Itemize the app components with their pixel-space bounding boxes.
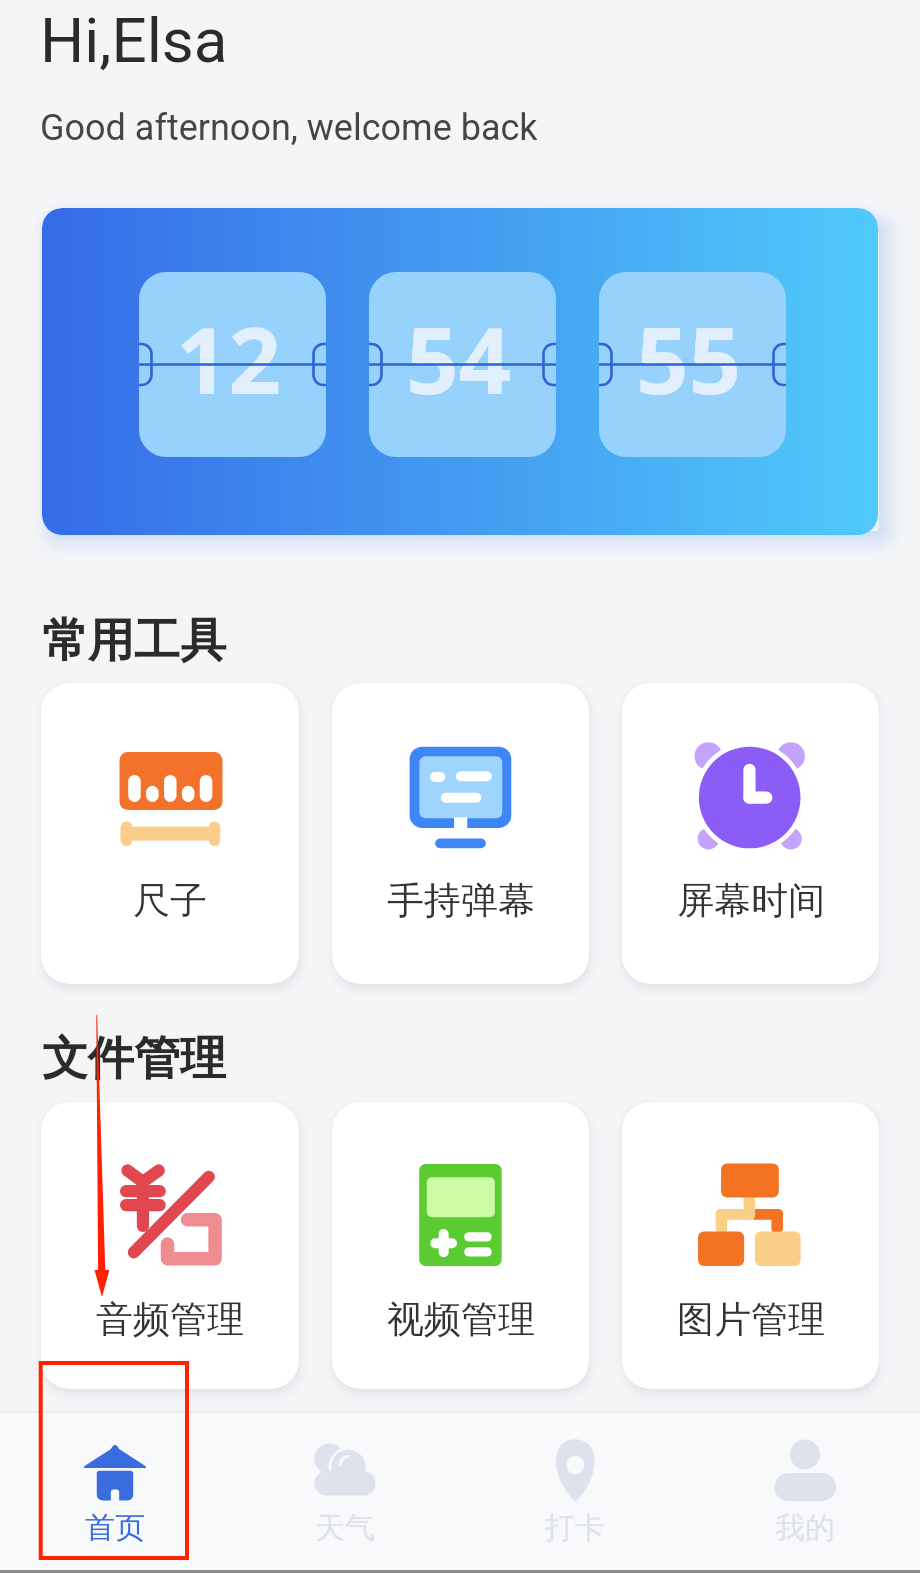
staticText: 音频管理 [96, 1296, 244, 1343]
staticText: 常用工具 [42, 612, 226, 670]
staticText: 打卡 [545, 1509, 605, 1547]
button[interactable]: Flip clock 12:54:55 [42, 208, 878, 535]
button[interactable]: 视频管理 [332, 1102, 589, 1389]
button[interactable]: 天气 [230, 1413, 460, 1573]
button[interactable]: 我的 [690, 1413, 920, 1573]
staticText: 55 [636, 296, 742, 421]
button[interactable]: 手持弹幕 [332, 683, 589, 984]
staticText: 54 [406, 296, 512, 421]
staticText: 手持弹幕 [387, 877, 535, 924]
button[interactable]: 打卡 [460, 1413, 690, 1573]
staticText: Hi,Elsa [40, 4, 228, 77]
staticText: 屏幕时间 [677, 877, 825, 924]
button[interactable]: 尺子 [41, 683, 299, 984]
button[interactable]: 屏幕时间 [622, 683, 879, 984]
button[interactable]: 音频管理 [41, 1102, 299, 1389]
button[interactable]: 首页 [0, 1413, 230, 1573]
staticText: 12 [176, 296, 282, 421]
staticText: 首页 [85, 1509, 145, 1547]
staticText: Good afternoon, welcome back [40, 107, 538, 149]
staticText: 我的 [775, 1509, 835, 1547]
staticText: 尺子 [133, 877, 207, 924]
staticText: 文件管理 [42, 1030, 226, 1088]
staticText: 图片管理 [677, 1296, 825, 1343]
staticText: 天气 [315, 1509, 375, 1547]
button[interactable]: 图片管理 [622, 1102, 879, 1389]
staticText: 视频管理 [387, 1296, 535, 1343]
